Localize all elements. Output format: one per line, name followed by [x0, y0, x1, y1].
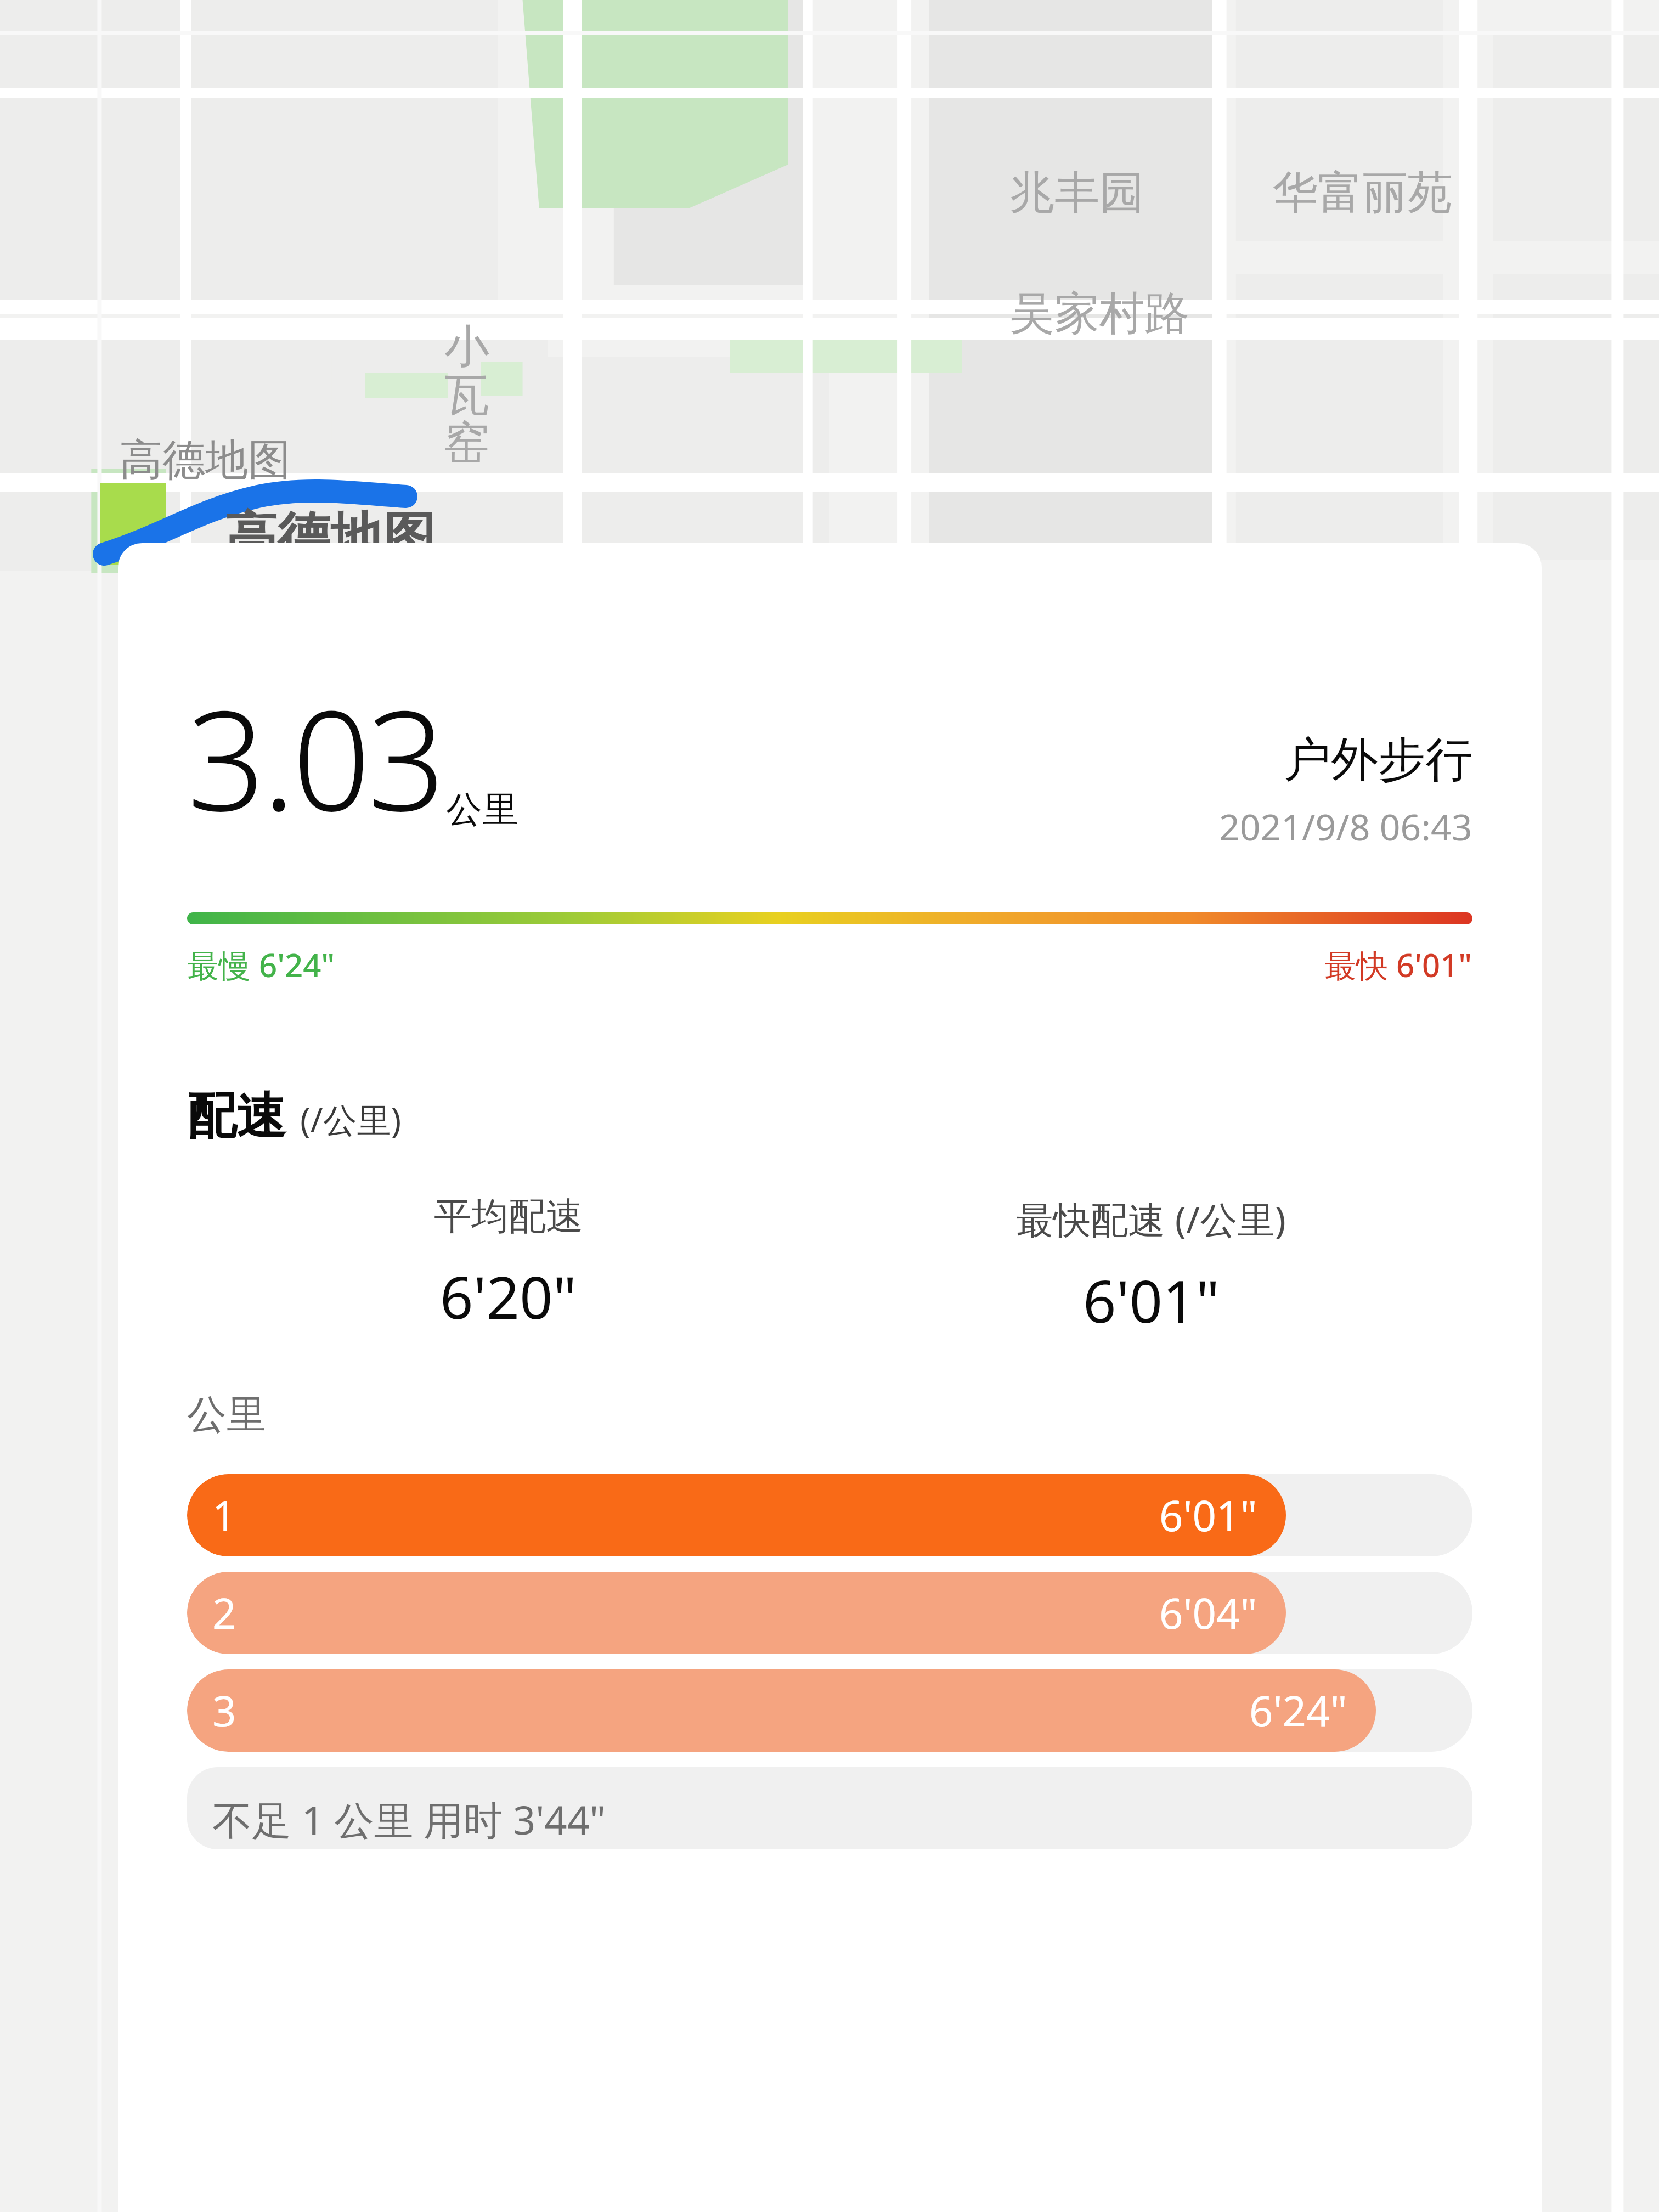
staticText: 3.03 [187, 664, 443, 851]
staticText: 6'01" [1159, 1487, 1257, 1544]
staticText: 公里 [446, 787, 518, 832]
staticText: 最快配速 (/公里) [1016, 1193, 1286, 1244]
staticText: 吴家村路 [1009, 285, 1189, 342]
staticText: 6'01" [1083, 1261, 1220, 1340]
staticText: 最慢 6'24" [187, 943, 335, 986]
staticText: 华富丽苑 [1273, 165, 1453, 221]
staticText: 公里 [187, 1390, 266, 1440]
staticText: 平均配速 [434, 1193, 583, 1240]
staticText: 高德地图 [225, 505, 436, 571]
staticText: (/公里) [300, 1096, 402, 1143]
staticText: 户外步行 [1284, 730, 1472, 789]
staticText: 最快 6'01" [1324, 943, 1472, 986]
button[interactable]: 最快配速 (/公里) [830, 1193, 1472, 1340]
staticText: 高德地图 [120, 433, 291, 487]
button[interactable]: 3 [187, 1669, 1472, 1752]
staticText: 3 [212, 1682, 236, 1739]
staticText: 6'20" [440, 1257, 577, 1336]
staticText: 配速 [187, 1085, 286, 1147]
staticText: 2 [212, 1584, 236, 1641]
staticText: 6'04" [1159, 1584, 1257, 1641]
staticText: 6'24" [1249, 1682, 1347, 1739]
staticText: 不足 1 公里 用时 3'44" [212, 1792, 606, 1846]
staticText: 小 瓦 窑 [444, 318, 489, 471]
staticText: 1 [212, 1487, 236, 1544]
button[interactable]: 平均配速 [187, 1193, 830, 1336]
staticText: 兆丰园 [1009, 165, 1144, 221]
button[interactable]: 2 [187, 1572, 1472, 1654]
button[interactable]: 不足 1 公里 用时 3'44" [187, 1767, 1472, 1849]
staticText: 2021/9/8 06:43 [1219, 802, 1472, 851]
button[interactable]: 1 [187, 1474, 1472, 1556]
